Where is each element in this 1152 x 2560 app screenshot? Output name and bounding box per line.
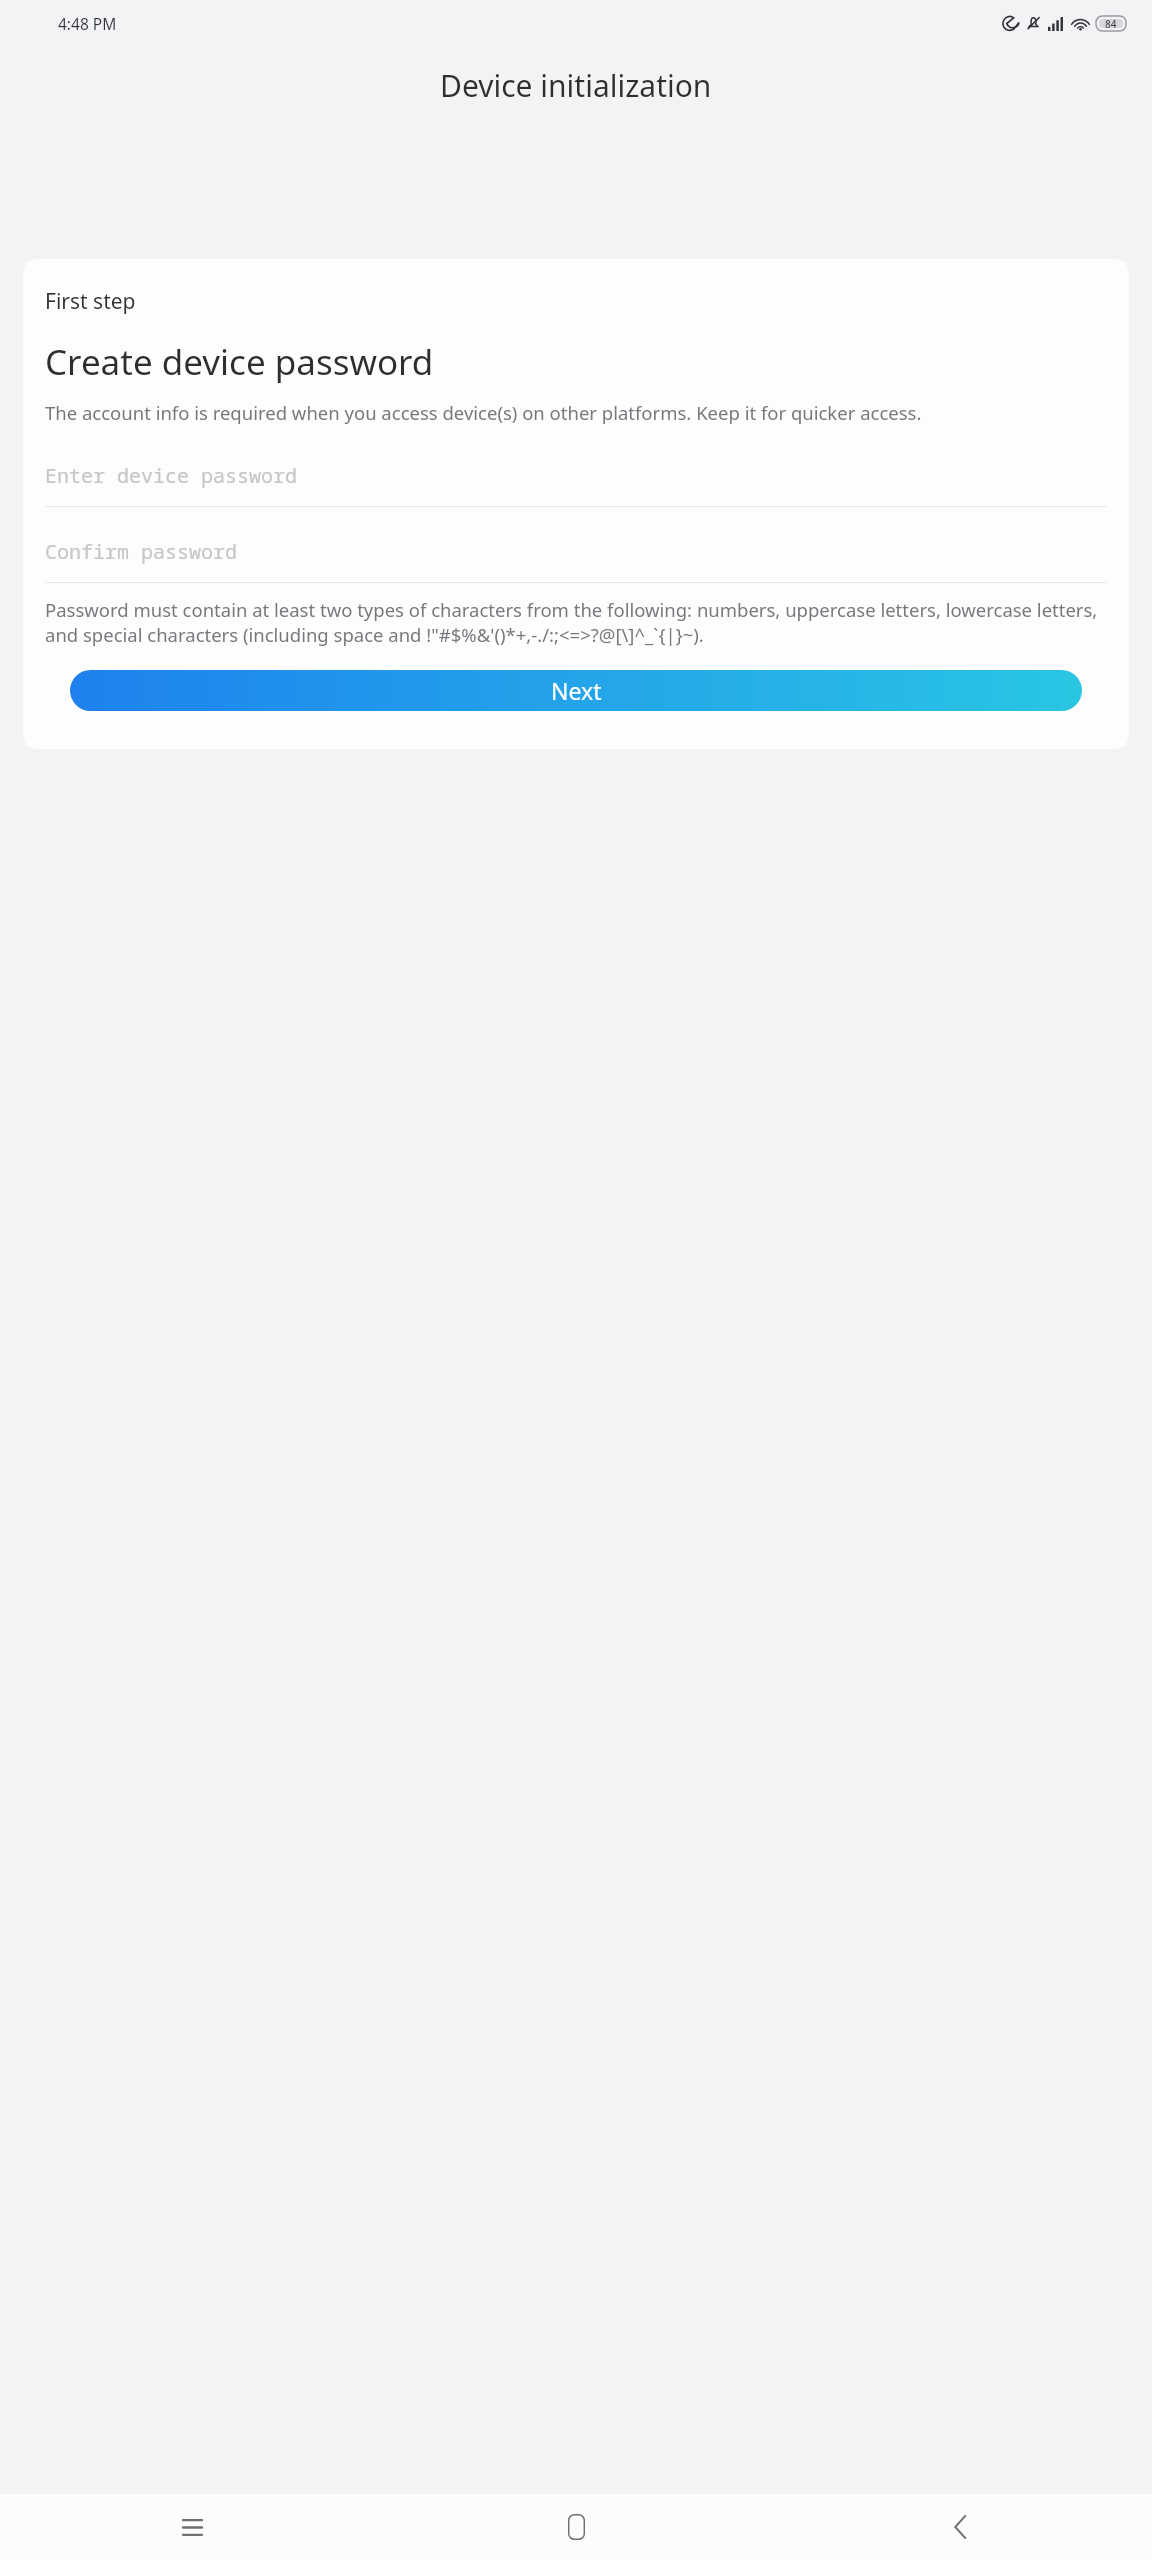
button[interactable]: Back bbox=[768, 2494, 1152, 2560]
staticText: 84 bbox=[1105, 17, 1117, 31]
staticText: Password must contain at least two types… bbox=[45, 597, 1107, 648]
button[interactable]: Confirm password bbox=[45, 529, 1107, 583]
staticText: 4:48 PM bbox=[58, 13, 117, 34]
button[interactable]: Next bbox=[70, 670, 1082, 711]
staticText: Next bbox=[551, 675, 602, 706]
button[interactable]: Home bbox=[384, 2494, 768, 2560]
staticText: Create device password bbox=[45, 338, 434, 386]
button[interactable]: Enter device password bbox=[45, 453, 1107, 507]
button[interactable]: Recent apps bbox=[0, 2494, 384, 2560]
staticText: Enter device password bbox=[45, 462, 297, 489]
staticText: Confirm password bbox=[45, 538, 237, 565]
staticText: Device initialization bbox=[440, 65, 712, 106]
staticText: The account info is required when you ac… bbox=[45, 400, 922, 425]
staticText: First step bbox=[45, 287, 136, 316]
